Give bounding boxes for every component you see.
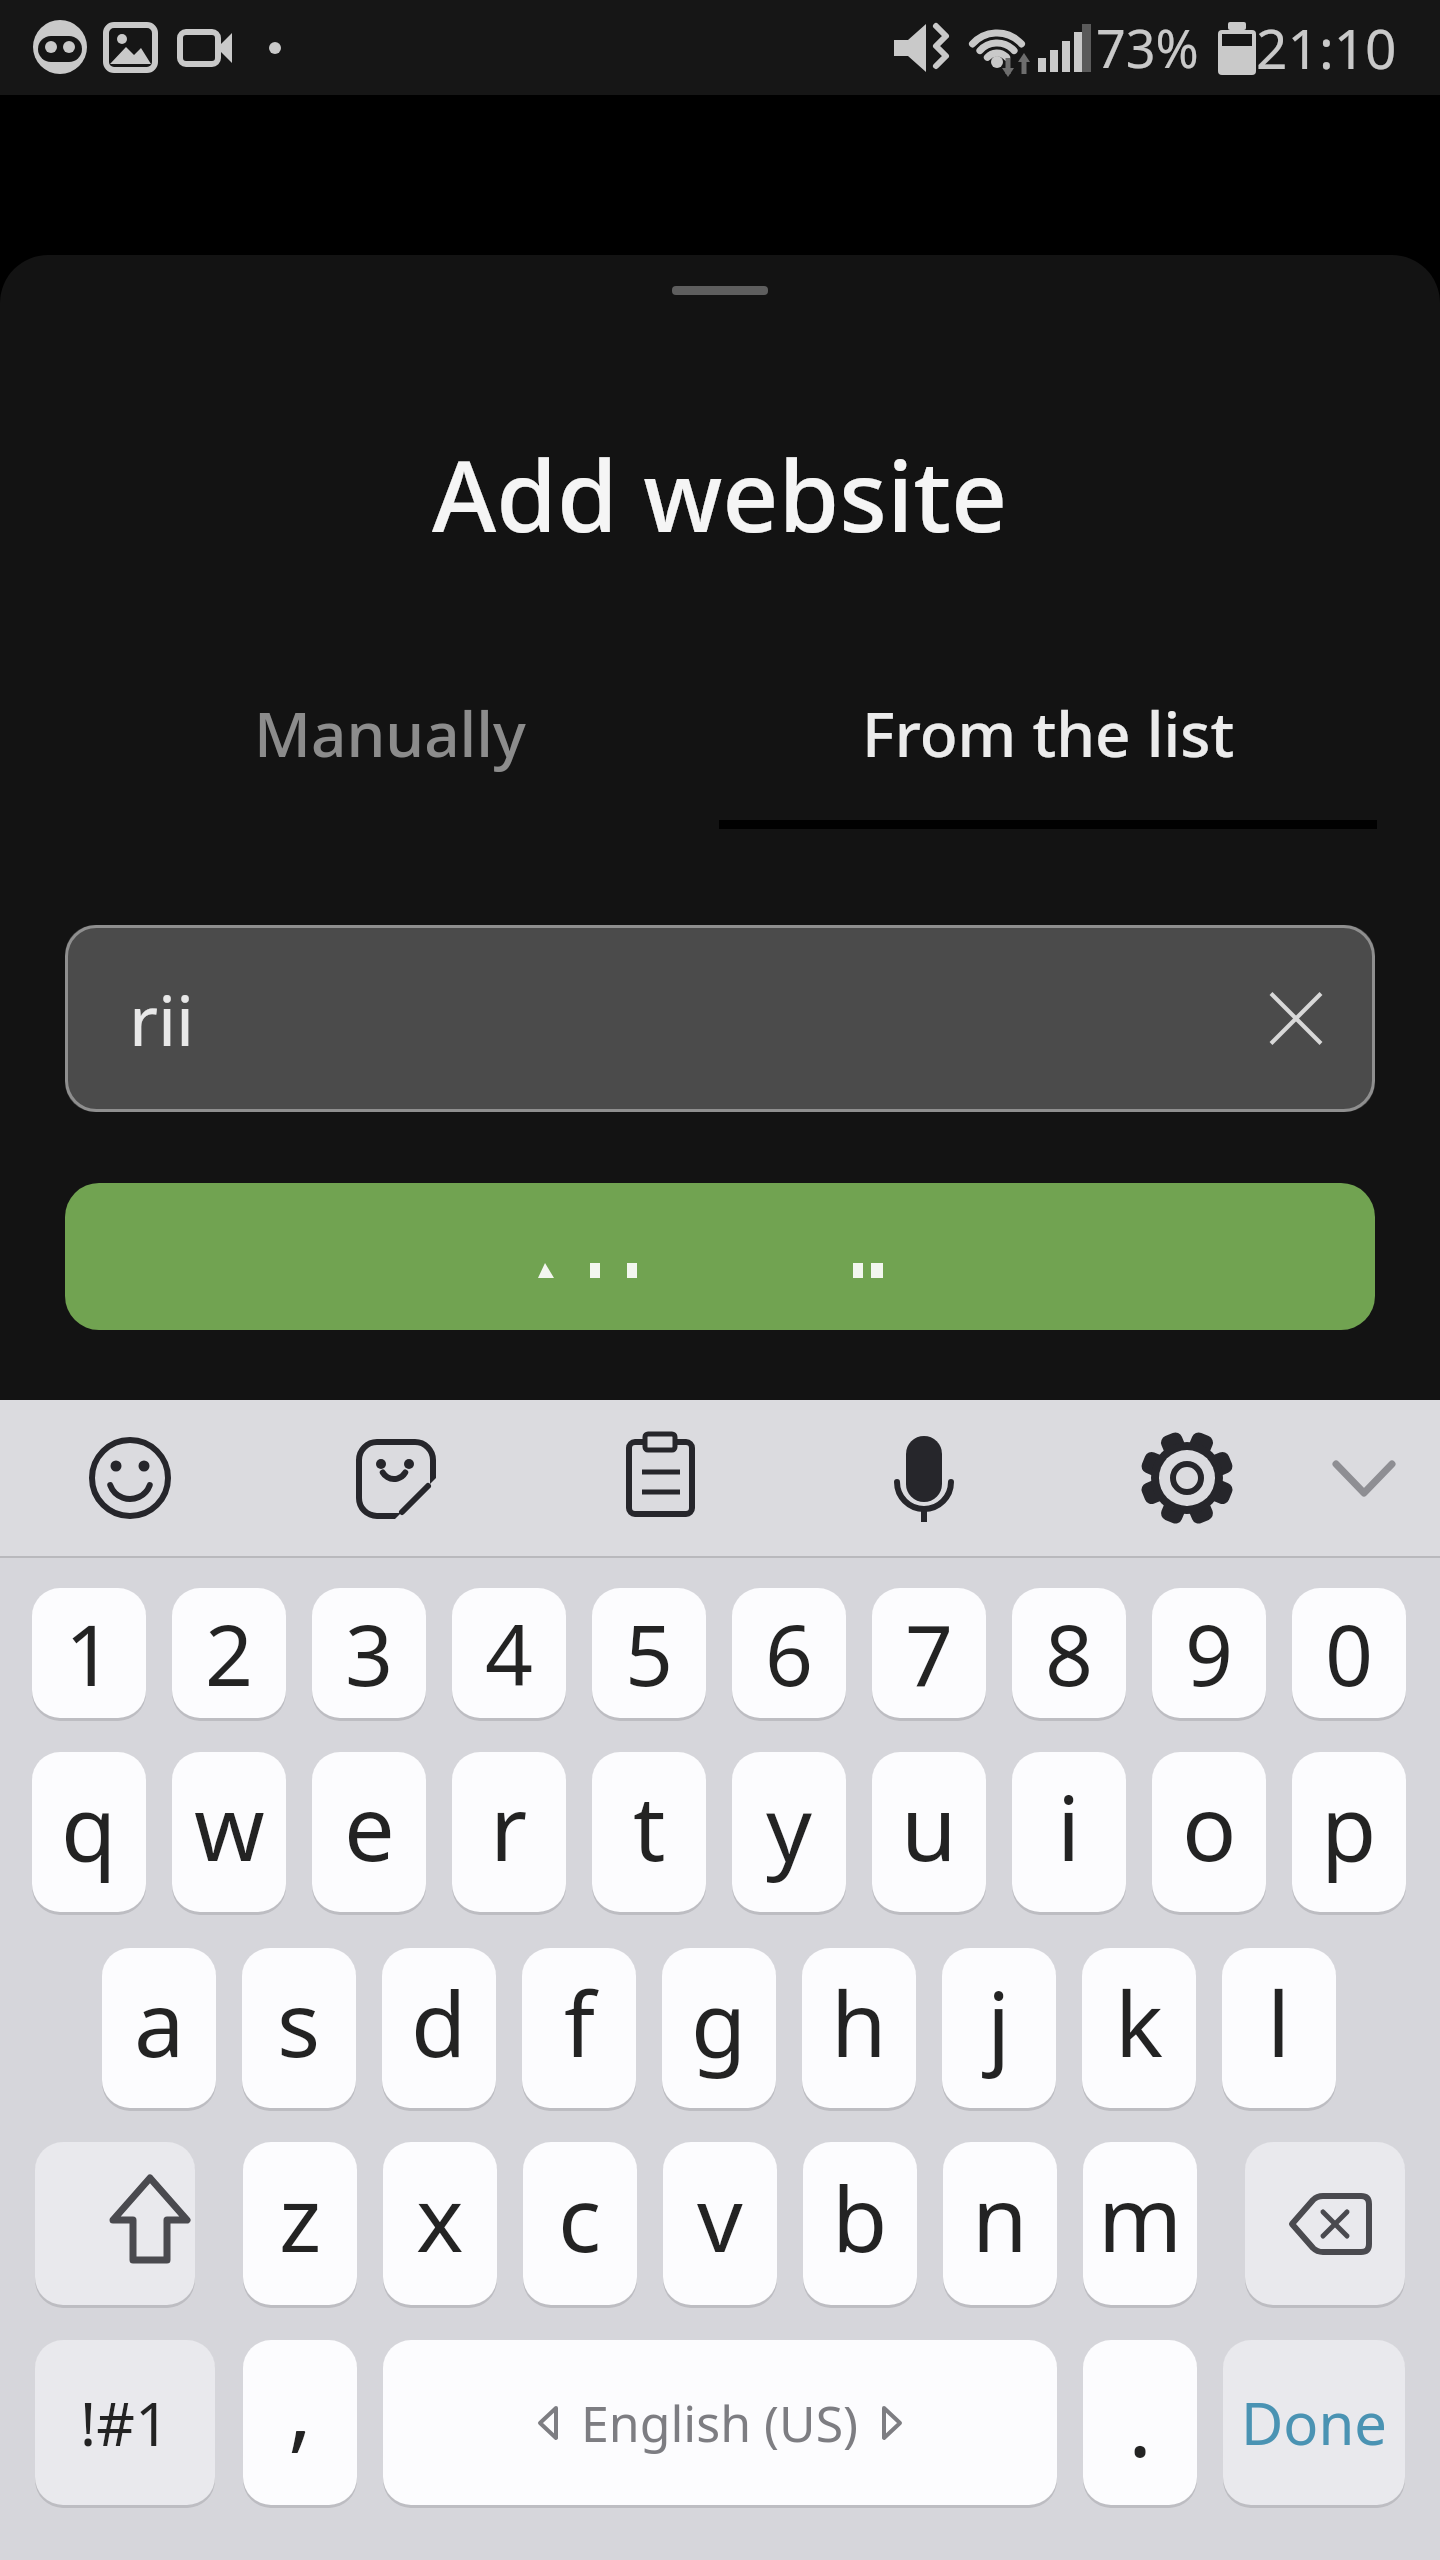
- staticText: rii: [129, 971, 195, 1066]
- button[interactable]: [383, 2340, 1057, 2505]
- staticText: u: [901, 1765, 957, 1888]
- button[interactable]: 1: [32, 1588, 146, 1718]
- staticText: c: [558, 2156, 602, 2279]
- staticText: k: [1115, 1961, 1164, 2084]
- staticText: !#1: [80, 2382, 170, 2464]
- staticText: h: [831, 1961, 887, 2084]
- button[interactable]: [1245, 2142, 1405, 2305]
- staticText: q: [61, 1765, 117, 1888]
- staticText: 8: [1045, 1596, 1094, 1710]
- button[interactable]: 9: [1152, 1588, 1266, 1718]
- staticText: Add website: [432, 427, 1008, 557]
- button[interactable]: r: [452, 1752, 566, 1912]
- button[interactable]: 4: [452, 1588, 566, 1718]
- button[interactable]: !#1: [35, 2340, 215, 2505]
- staticText: a: [134, 1961, 185, 2084]
- button[interactable]: a: [102, 1948, 216, 2108]
- button[interactable]: 8: [1012, 1588, 1126, 1718]
- staticText: o: [1182, 1765, 1237, 1888]
- button[interactable]: p: [1292, 1752, 1406, 1912]
- staticText: e: [344, 1765, 395, 1888]
- button[interactable]: 3: [312, 1588, 426, 1718]
- button[interactable]: ,: [243, 2340, 357, 2505]
- staticText: n: [972, 2156, 1028, 2279]
- staticText: Manually: [254, 691, 526, 775]
- staticText: v: [697, 2156, 743, 2279]
- button[interactable]: Done: [1223, 2340, 1405, 2505]
- button[interactable]: u: [872, 1752, 986, 1912]
- staticText: 21:10: [1256, 10, 1397, 85]
- button[interactable]: d: [382, 1948, 496, 2108]
- button[interactable]: t: [592, 1752, 706, 1912]
- button[interactable]: s: [242, 1948, 356, 2108]
- staticText: 7: [905, 1596, 954, 1710]
- button[interactable]: g: [662, 1948, 776, 2108]
- button[interactable]: x: [383, 2142, 497, 2305]
- button[interactable]: rii: [65, 925, 1375, 1112]
- button[interactable]: e: [312, 1752, 426, 1912]
- button[interactable]: i: [1012, 1752, 1126, 1912]
- button[interactable]: [35, 2142, 195, 2305]
- button[interactable]: 6: [732, 1588, 846, 1718]
- button[interactable]: w: [172, 1752, 286, 1912]
- button[interactable]: 0: [1292, 1588, 1406, 1718]
- button[interactable]: c: [523, 2142, 637, 2305]
- staticText: t: [633, 1765, 666, 1888]
- staticText: 4: [485, 1596, 534, 1710]
- button[interactable]: 7: [872, 1588, 986, 1718]
- staticText: r: [490, 1765, 528, 1888]
- staticText: z: [279, 2156, 322, 2279]
- button[interactable]: q: [32, 1752, 146, 1912]
- staticText: 9: [1185, 1596, 1234, 1710]
- button[interactable]: m: [1083, 2142, 1197, 2305]
- staticText: m: [1098, 2156, 1183, 2279]
- button[interactable]: l: [1222, 1948, 1336, 2108]
- staticText: s: [277, 1961, 321, 2084]
- staticText: i: [1057, 1765, 1081, 1888]
- button[interactable]: Manually: [61, 683, 719, 783]
- button[interactable]: From the list: [719, 683, 1377, 783]
- staticText: 73%: [1096, 12, 1199, 83]
- staticText: f: [564, 1961, 595, 2084]
- button[interactable]: h: [802, 1948, 916, 2108]
- button[interactable]: b: [803, 2142, 917, 2305]
- button[interactable]: f: [522, 1948, 636, 2108]
- staticText: Done: [1241, 2383, 1387, 2462]
- staticText: x: [416, 2156, 464, 2279]
- staticText: d: [411, 1961, 467, 2084]
- staticText: 0: [1325, 1596, 1374, 1710]
- staticText: b: [832, 2156, 888, 2279]
- button[interactable]: o: [1152, 1752, 1266, 1912]
- staticText: 3: [345, 1596, 394, 1710]
- button[interactable]: y: [732, 1752, 846, 1912]
- button[interactable]: 5: [592, 1588, 706, 1718]
- staticText: p: [1321, 1765, 1377, 1888]
- button[interactable]: j: [942, 1948, 1056, 2108]
- button[interactable]: [65, 1183, 1375, 1330]
- staticText: .: [1128, 2361, 1153, 2484]
- staticText: w: [194, 1765, 265, 1888]
- staticText: 5: [625, 1596, 674, 1710]
- staticText: l: [1267, 1961, 1291, 2084]
- staticText: From the list: [862, 691, 1235, 775]
- staticText: English (US): [581, 2389, 859, 2457]
- staticText: ,: [288, 2345, 313, 2468]
- button[interactable]: v: [663, 2142, 777, 2305]
- button[interactable]: n: [943, 2142, 1057, 2305]
- button[interactable]: z: [243, 2142, 357, 2305]
- staticText: 1: [65, 1596, 114, 1710]
- staticText: 2: [205, 1596, 254, 1710]
- button[interactable]: .: [1083, 2340, 1197, 2505]
- staticText: 6: [765, 1596, 814, 1710]
- staticText: y: [766, 1765, 812, 1888]
- staticText: g: [691, 1961, 747, 2084]
- staticText: j: [987, 1961, 1011, 2084]
- button[interactable]: 2: [172, 1588, 286, 1718]
- button[interactable]: k: [1082, 1948, 1196, 2108]
